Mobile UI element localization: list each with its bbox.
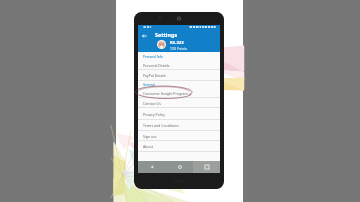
button[interactable]: PayPal Details bbox=[138, 70, 220, 81]
button[interactable]: Personal Details bbox=[138, 61, 220, 70]
staticText: Terms and Conditions bbox=[143, 123, 179, 128]
button[interactable]: Home bbox=[166, 161, 193, 173]
staticText: Personal Info bbox=[143, 55, 163, 59]
button[interactable]: Contact Us bbox=[138, 98, 220, 108]
button[interactable]: Terms and Conditions bbox=[138, 120, 220, 131]
staticText: Consumer Insight Program bbox=[143, 91, 188, 96]
button[interactable]: Recent apps bbox=[193, 161, 220, 173]
staticText: General bbox=[143, 83, 155, 87]
staticText: Privacy Policy bbox=[143, 112, 166, 117]
staticText: RS-323 bbox=[170, 40, 184, 46]
staticText: Sign out bbox=[143, 134, 157, 139]
button[interactable]: About bbox=[138, 141, 220, 152]
staticText: About bbox=[143, 144, 153, 149]
button[interactable]: Sign out bbox=[138, 131, 220, 141]
staticText: PayPal Details bbox=[143, 73, 166, 78]
staticText: 120 Points bbox=[170, 46, 188, 51]
staticText: Contact Us bbox=[143, 101, 161, 106]
button[interactable]: Privacy Policy bbox=[138, 108, 220, 120]
button[interactable]: Consumer Insight Program bbox=[138, 89, 220, 98]
button[interactable]: Back bbox=[138, 161, 166, 173]
staticText: Personal Details bbox=[143, 63, 170, 68]
staticText: Settings bbox=[155, 31, 178, 38]
button[interactable]: Back bbox=[139, 31, 149, 40]
